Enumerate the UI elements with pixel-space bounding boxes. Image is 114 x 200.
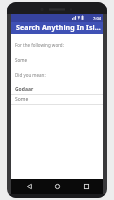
staticText: Search Anything In Islam xyxy=(16,23,103,33)
staticText: Godaar xyxy=(15,86,34,93)
button[interactable]: Recent apps xyxy=(75,179,97,194)
button[interactable]: Some xyxy=(11,95,103,104)
staticText: Some xyxy=(15,96,29,103)
staticText: Some xyxy=(15,57,27,63)
staticText: For the following word: xyxy=(15,42,64,48)
staticText: 7:04 xyxy=(93,16,101,21)
button[interactable]: Back xyxy=(18,179,40,194)
button[interactable]: Godaar xyxy=(11,85,103,94)
button[interactable]: Search Anything In Islam xyxy=(11,22,103,34)
staticText: Did you mean: xyxy=(15,72,46,78)
button[interactable]: Home xyxy=(46,179,68,194)
